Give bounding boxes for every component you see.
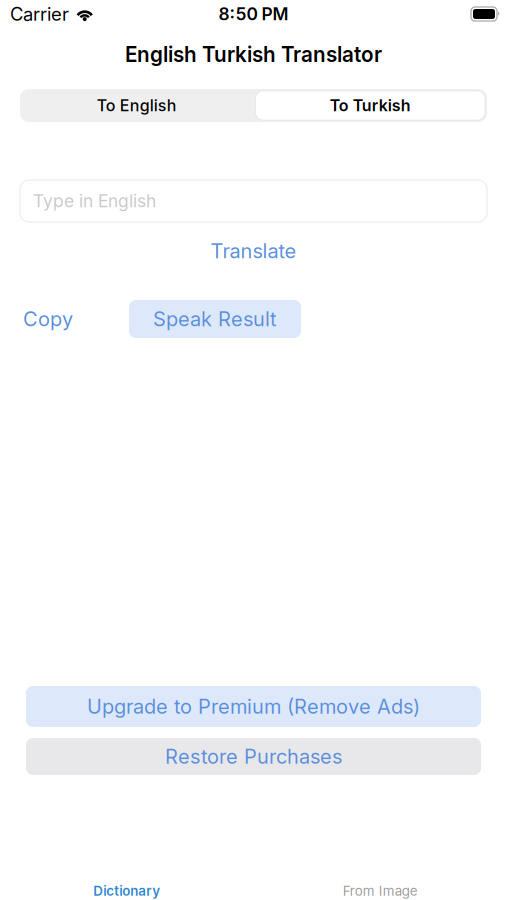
button[interactable]: To Turkish — [253, 89, 487, 122]
button[interactable]: Restore Purchases — [26, 738, 481, 775]
button[interactable]: Type in English — [20, 180, 487, 222]
button[interactable]: From Image — [253, 830, 507, 899]
staticText: Restore Purchases — [165, 744, 342, 769]
button[interactable]: Dictionary — [0, 830, 253, 899]
staticText: Carrier — [10, 3, 69, 25]
staticText: To English — [97, 96, 177, 115]
staticText: Speak Result — [153, 307, 277, 331]
staticText: Dictionary — [93, 883, 160, 899]
staticText: Upgrade to Premium (Remove Ads) — [87, 694, 420, 719]
button[interactable]: Copy — [23, 300, 73, 338]
staticText: Type in English — [33, 190, 156, 211]
button[interactable]: Translate — [210, 232, 296, 270]
staticText: Copy — [23, 307, 73, 331]
button[interactable]: Speak Result — [129, 300, 301, 338]
button[interactable]: Upgrade to Premium (Remove Ads) — [26, 686, 481, 727]
staticText: English Turkish Translator — [125, 42, 382, 67]
staticText: To Turkish — [330, 96, 411, 115]
staticText: 8:50 PM — [218, 3, 288, 24]
button[interactable]: To English — [20, 89, 253, 122]
staticText: From Image — [343, 883, 418, 899]
staticText: Translate — [210, 239, 296, 263]
